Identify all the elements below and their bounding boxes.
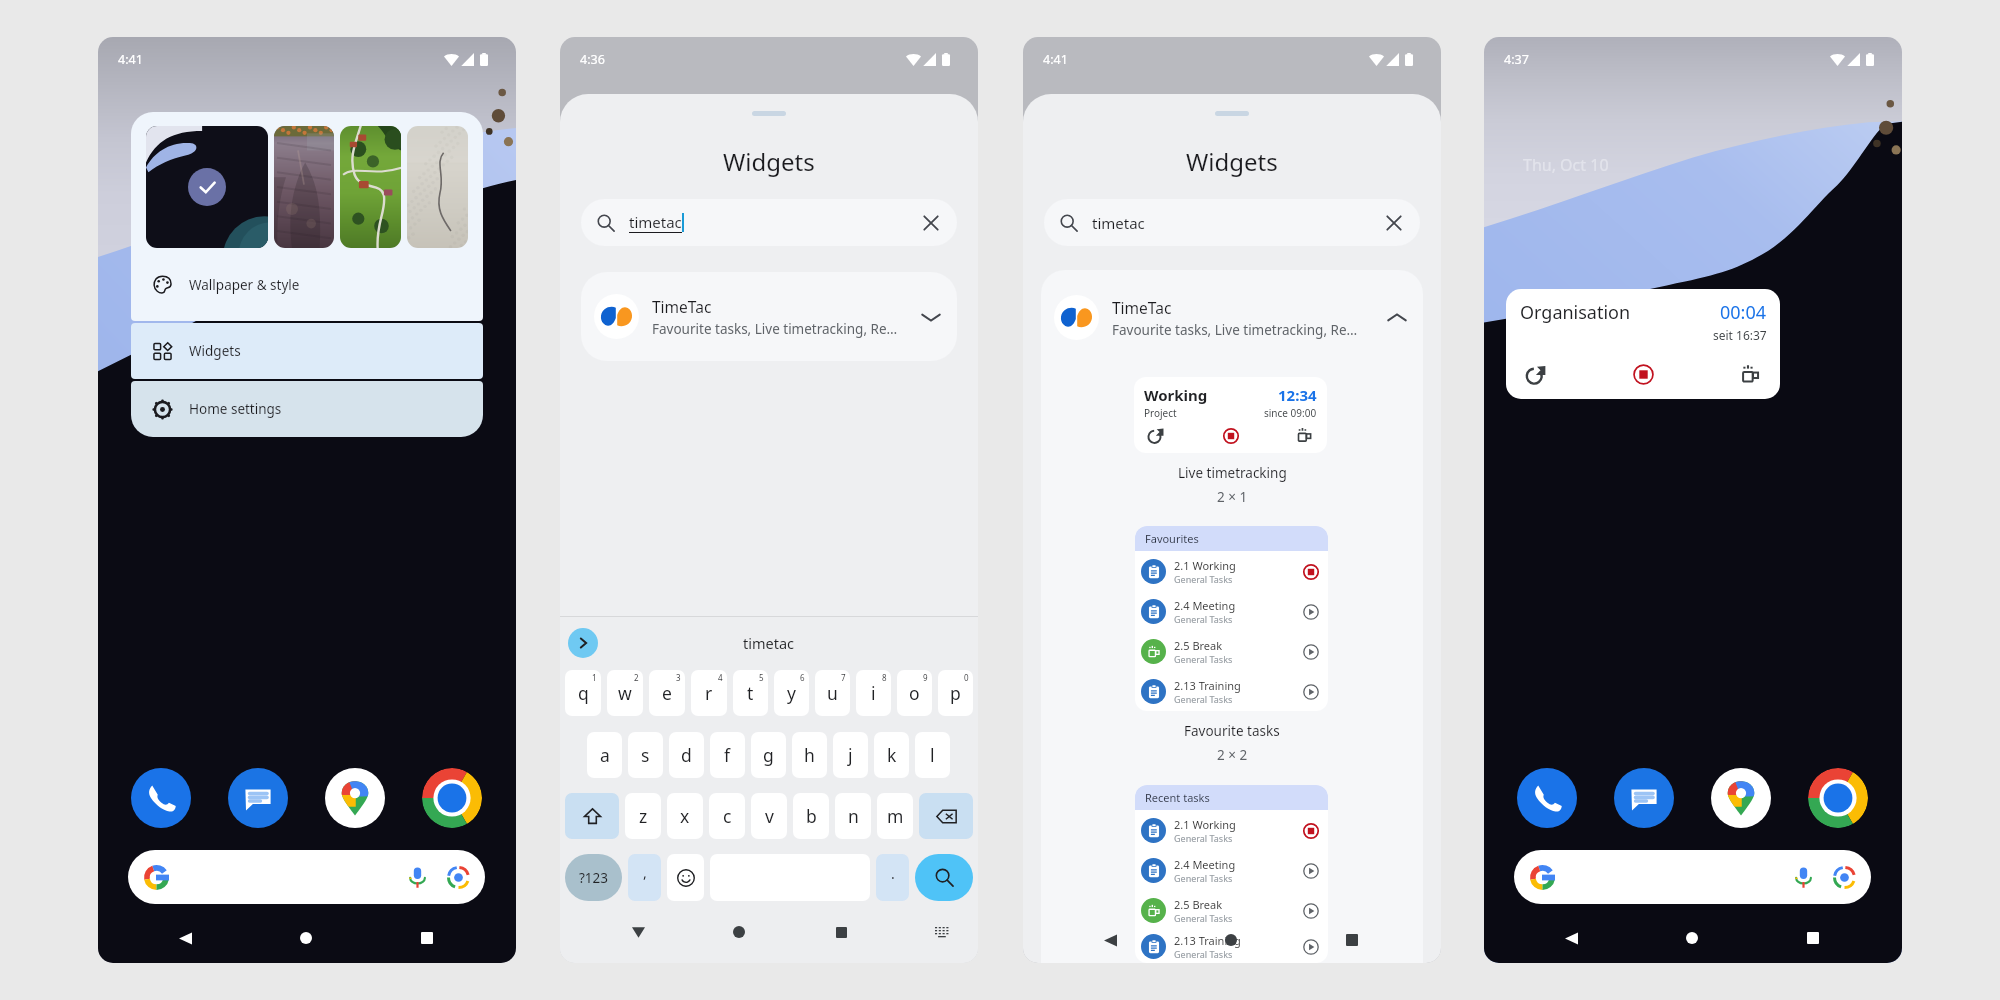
button[interactable]: d xyxy=(669,732,704,778)
button[interactable]: Maps xyxy=(1711,768,1771,828)
button[interactable]: Emoji xyxy=(667,854,704,901)
button[interactable]: Clear search xyxy=(915,207,947,239)
button[interactable]: Chrome xyxy=(422,768,482,828)
button[interactable]: Start xyxy=(1301,861,1320,880)
button[interactable]: g xyxy=(751,732,786,778)
button[interactable]: timetac xyxy=(581,199,957,246)
button[interactable]: Home xyxy=(1218,927,1244,953)
button[interactable]: s xyxy=(628,732,663,778)
button[interactable]: m xyxy=(877,793,913,839)
button[interactable]: w xyxy=(607,670,643,716)
button[interactable]: Refresh xyxy=(1521,360,1549,388)
button[interactable]: Start xyxy=(1301,642,1320,661)
button[interactable]: ?123 xyxy=(565,854,622,901)
button[interactable]: Shift xyxy=(565,793,619,839)
button[interactable]: TimeTac xyxy=(1041,273,1423,362)
button[interactable]: 2.4 Meeting xyxy=(1141,850,1320,890)
button[interactable]: b xyxy=(793,793,829,839)
button[interactable]: Break xyxy=(1294,425,1315,446)
button[interactable]: u xyxy=(815,670,850,716)
button[interactable]: 2.5 Break xyxy=(1141,890,1320,930)
button[interactable]: h xyxy=(792,732,827,778)
button[interactable]: Voice search xyxy=(128,850,485,904)
button[interactable]: Recents xyxy=(1800,925,1826,951)
button[interactable]: Phone xyxy=(131,768,191,828)
button[interactable]: Start xyxy=(1301,901,1320,920)
button[interactable]: Start xyxy=(1301,682,1320,701)
button[interactable]: k xyxy=(874,732,909,778)
button[interactable]: Start xyxy=(1301,602,1320,621)
button[interactable]: Stop xyxy=(1220,425,1241,446)
button[interactable]: Wallpaper & style xyxy=(131,248,483,321)
button[interactable]: , xyxy=(628,854,661,901)
button[interactable]: 2.13 Training xyxy=(1141,671,1320,711)
button[interactable]: n xyxy=(835,793,871,839)
button[interactable] xyxy=(407,126,468,248)
button[interactable]: l xyxy=(915,732,950,778)
button[interactable]: t xyxy=(733,670,768,716)
button[interactable]: r xyxy=(691,670,727,716)
button[interactable]: Clear search xyxy=(1378,207,1410,239)
button[interactable]: Break xyxy=(1736,360,1764,388)
button[interactable]: i xyxy=(856,670,891,716)
button[interactable] xyxy=(274,126,334,248)
button[interactable]: Home xyxy=(1679,925,1705,951)
button[interactable]: Expand xyxy=(914,300,948,334)
button[interactable]: Hide keyboard xyxy=(626,920,650,944)
staticText: General Tasks xyxy=(1174,832,1233,844)
button[interactable]: Organisation xyxy=(1506,289,1780,399)
button[interactable]: Recents xyxy=(414,925,440,951)
button[interactable]: c xyxy=(709,793,745,839)
button[interactable]: Start xyxy=(1301,937,1320,956)
button[interactable]: Stop xyxy=(1629,360,1657,388)
button[interactable]: Backspace xyxy=(919,793,973,839)
button[interactable]: Back xyxy=(1558,925,1584,951)
button[interactable]: Recents xyxy=(829,920,853,944)
button[interactable]: Home xyxy=(293,925,319,951)
button[interactable] xyxy=(146,126,268,248)
button[interactable]: Widgets xyxy=(131,323,483,379)
button[interactable]: Recents xyxy=(1339,927,1365,953)
button[interactable]: z xyxy=(625,793,661,839)
button[interactable]: Working xyxy=(1134,377,1327,453)
button[interactable]: More suggestions xyxy=(568,628,598,658)
button[interactable]: Collapse xyxy=(1380,301,1414,335)
button[interactable]: Voice search xyxy=(1514,850,1871,904)
button[interactable]: timetac xyxy=(1044,199,1420,246)
button[interactable]: e xyxy=(649,670,685,716)
button[interactable]: j xyxy=(833,732,868,778)
button[interactable]: v xyxy=(751,793,787,839)
button[interactable]: p xyxy=(938,670,973,716)
button[interactable]: Maps xyxy=(325,768,385,828)
button[interactable]: Messages xyxy=(1614,768,1674,828)
button[interactable]: . xyxy=(876,854,909,901)
button[interactable]: a xyxy=(587,732,622,778)
button[interactable]: Back xyxy=(172,925,198,951)
staticText: Home settings xyxy=(189,400,282,418)
button[interactable]: 2.5 Break xyxy=(1141,631,1320,671)
button[interactable]: 2.13 Training xyxy=(1141,930,1320,963)
button[interactable]: Search xyxy=(915,854,973,901)
button[interactable]: TimeTac xyxy=(581,272,957,361)
button[interactable]: 2.1 Working xyxy=(1141,810,1320,850)
button[interactable]: 2.1 Working xyxy=(1141,551,1320,591)
button[interactable]: Home xyxy=(727,920,751,944)
staticText: General Tasks xyxy=(1174,912,1233,924)
button[interactable]: Stop xyxy=(1301,562,1320,581)
button[interactable] xyxy=(340,126,401,248)
button[interactable]: f xyxy=(710,732,745,778)
button[interactable]: Phone xyxy=(1517,768,1577,828)
button[interactable]: o xyxy=(897,670,932,716)
button[interactable]: Chrome xyxy=(1808,768,1868,828)
button[interactable]: Switch keyboard xyxy=(930,920,954,944)
button[interactable]: Refresh xyxy=(1145,425,1166,446)
button[interactable]: Home settings xyxy=(131,381,483,437)
button[interactable]: x xyxy=(667,793,703,839)
button[interactable]: Stop xyxy=(1301,821,1320,840)
button[interactable]: 2.4 Meeting xyxy=(1141,591,1320,631)
button[interactable]: q xyxy=(565,670,601,716)
button[interactable]: Back xyxy=(1097,927,1123,953)
button[interactable]: y xyxy=(774,670,809,716)
button[interactable]: Messages xyxy=(228,768,288,828)
